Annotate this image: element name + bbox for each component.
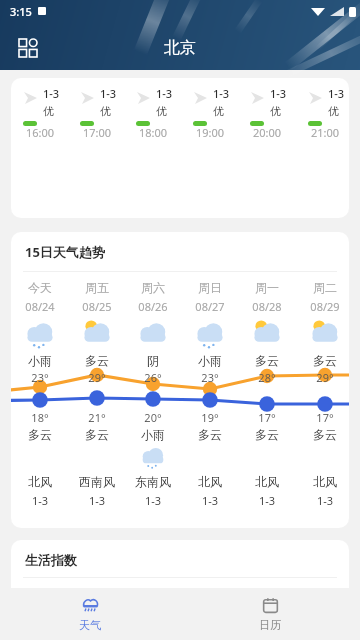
staticText: 08/29 — [299, 299, 349, 314]
staticText: 小雨 — [127, 427, 179, 442]
staticText: 15日天气趋势 — [25, 243, 105, 261]
staticText: 1-3 — [328, 86, 345, 101]
staticText: 优 — [270, 104, 281, 118]
staticText: 阴 — [127, 353, 179, 368]
staticText: 1-3 — [14, 493, 66, 508]
staticText: 北京 — [164, 38, 196, 58]
staticText: 17:00 — [75, 125, 119, 140]
staticText: 1-3 — [299, 493, 349, 508]
staticText: 17° — [241, 410, 293, 425]
staticText: 1-3 — [213, 86, 230, 101]
staticText: 多云 — [14, 427, 66, 442]
staticText: 20:00 — [245, 125, 289, 140]
staticText: 1-3 — [156, 86, 173, 101]
staticText: 周二 — [299, 280, 349, 295]
staticText: 17° — [299, 410, 349, 425]
staticText: 日历 — [259, 618, 281, 632]
staticText: 优 — [328, 104, 339, 118]
staticText: 北风 — [299, 474, 349, 489]
button[interactable]: 生活指数 — [11, 540, 349, 600]
staticText: 1-3 — [241, 493, 293, 508]
staticText: 北风 — [241, 474, 293, 489]
staticText: 优 — [156, 104, 167, 118]
staticText: 北风 — [184, 474, 236, 489]
staticText: 周五 — [71, 280, 123, 295]
staticText: 1-3 — [100, 86, 117, 101]
staticText: 多云 — [71, 353, 123, 368]
staticText: 天气 — [79, 618, 101, 632]
staticText: 小雨 — [14, 353, 66, 368]
staticText: 1-3 — [127, 493, 179, 508]
staticText: 多云 — [299, 353, 349, 368]
staticText: 26° — [127, 370, 179, 385]
staticText: 生活指数 — [25, 552, 77, 568]
staticText: 1-3 — [184, 493, 236, 508]
staticText: 1-3 — [270, 86, 287, 101]
staticText: 优 — [43, 104, 54, 118]
staticText: 优 — [100, 104, 111, 118]
staticText: 23° — [14, 370, 66, 385]
staticText: 16:00 — [18, 125, 62, 140]
staticText: 21° — [71, 410, 123, 425]
button[interactable]: 日历 — [180, 588, 360, 640]
staticText: 08/25 — [71, 299, 123, 314]
staticText: 多云 — [241, 427, 293, 442]
staticText: 08/28 — [241, 299, 293, 314]
staticText: 29° — [299, 370, 349, 385]
staticText: 周六 — [127, 280, 179, 295]
staticText: 多云 — [299, 427, 349, 442]
staticText: 周一 — [241, 280, 293, 295]
button[interactable]: Cities — [12, 32, 44, 64]
staticText: 3:15 — [10, 4, 32, 19]
staticText: 今天 — [14, 280, 66, 295]
button[interactable]: 天气 — [0, 588, 180, 640]
staticText: 西南风 — [71, 474, 123, 489]
staticText: 多云 — [241, 353, 293, 368]
staticText: 18:00 — [131, 125, 175, 140]
staticText: 08/26 — [127, 299, 179, 314]
staticText: 东南风 — [127, 474, 179, 489]
staticText: 优 — [213, 104, 224, 118]
staticText: 23° — [184, 370, 236, 385]
staticText: 19° — [184, 410, 236, 425]
staticText: 1-3 — [43, 86, 60, 101]
button[interactable]: 1-3 — [11, 78, 349, 218]
staticText: 29° — [71, 370, 123, 385]
staticText: 小雨 — [184, 353, 236, 368]
staticText: 周日 — [184, 280, 236, 295]
staticText: 28° — [241, 370, 293, 385]
staticText: 北风 — [14, 474, 66, 489]
staticText: 20° — [127, 410, 179, 425]
staticText: 多云 — [184, 427, 236, 442]
staticText: 多云 — [71, 427, 123, 442]
staticText: 19:00 — [188, 125, 232, 140]
staticText: 21:00 — [303, 125, 347, 140]
staticText: 08/27 — [184, 299, 236, 314]
staticText: 08/24 — [14, 299, 66, 314]
staticText: 1-3 — [71, 493, 123, 508]
staticText: 18° — [14, 410, 66, 425]
